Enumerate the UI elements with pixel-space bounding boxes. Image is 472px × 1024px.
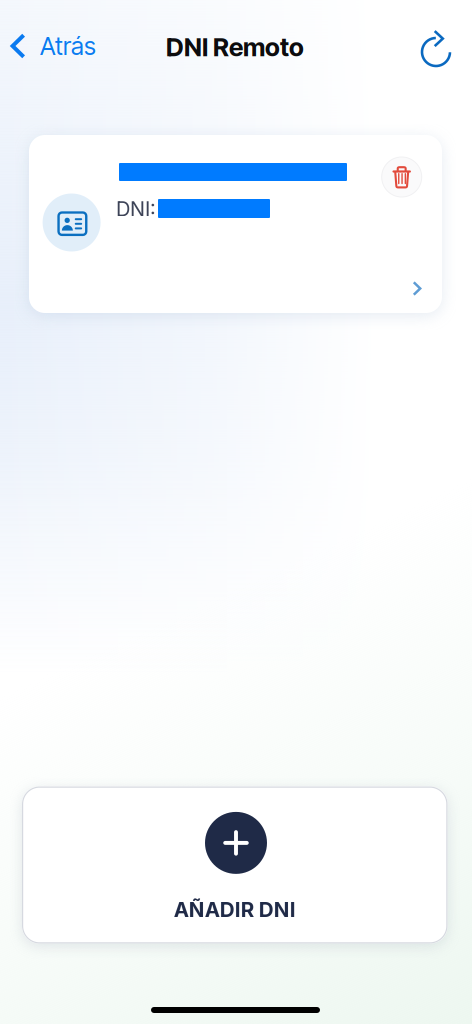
- staticText: DNI:: [116, 197, 156, 221]
- staticText: DNI Remoto: [166, 32, 304, 62]
- button[interactable]: AÑADIR DNI: [22, 786, 447, 943]
- button[interactable]: DNI:: [29, 135, 442, 313]
- button[interactable]: Actualizar: [412, 24, 460, 72]
- button[interactable]: Eliminar: [382, 157, 422, 197]
- button[interactable]: Atrás: [10, 23, 120, 69]
- staticText: Atrás: [40, 31, 96, 61]
- staticText: AÑADIR DNI: [174, 897, 296, 922]
